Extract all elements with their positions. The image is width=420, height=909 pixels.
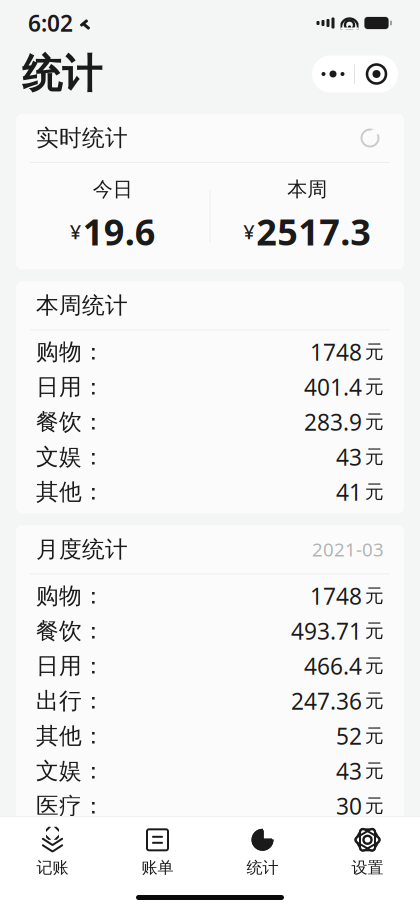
staticText: 统计 [22, 49, 102, 98]
staticText: 元 [365, 445, 384, 468]
staticText: 购物： [36, 338, 105, 366]
staticText: 1748 [310, 581, 362, 611]
staticText: 6:02 [28, 8, 73, 38]
staticText: 医疗： [36, 792, 105, 820]
staticText: 元 [365, 410, 384, 433]
staticText: 466.4 [304, 651, 362, 681]
staticText: 本周统计 [36, 291, 128, 319]
staticText: 出行： [36, 687, 105, 715]
button[interactable]: 更多与记录 [312, 55, 398, 92]
button[interactable]: 账单 [105, 825, 210, 879]
staticText: 41 [336, 477, 362, 507]
staticText: 元 [365, 759, 384, 782]
staticText: 其他： [36, 478, 105, 506]
staticText: 文娱： [36, 443, 105, 471]
staticText: 元 [365, 794, 384, 817]
staticText: ¥ [70, 218, 81, 245]
staticText: 493.71 [291, 616, 362, 646]
staticText: 43 [336, 442, 362, 472]
staticText: 元 [365, 340, 384, 363]
staticText: 19.6 [83, 208, 156, 255]
staticText: 元 [365, 480, 384, 503]
staticText: 247.36 [291, 686, 362, 716]
staticText: 日用： [36, 373, 105, 401]
staticText: 52 [336, 721, 362, 751]
staticText: 设置 [351, 858, 383, 877]
staticText: 2517.3 [256, 208, 371, 255]
staticText: 元 [365, 654, 384, 677]
staticText: 文娱： [36, 757, 105, 785]
staticText: 餐饮： [36, 617, 105, 645]
staticText: 元 [365, 584, 384, 607]
button[interactable]: 刷新 [356, 124, 384, 152]
staticText: 元 [365, 619, 384, 642]
staticText: 1748 [310, 337, 362, 367]
staticText: 元 [365, 689, 384, 712]
staticText: 日用： [36, 652, 105, 680]
staticText: 283.9 [304, 407, 362, 437]
staticText: 2021-03 [312, 537, 384, 562]
staticText: 记账 [36, 858, 68, 877]
staticText: 30 [336, 791, 362, 821]
staticText: 账单 [141, 858, 173, 877]
staticText: 本周 [287, 177, 327, 202]
staticText: 月度统计 [36, 535, 128, 563]
staticText: 今日 [93, 177, 133, 202]
staticText: 元 [365, 724, 384, 747]
staticText: 元 [365, 375, 384, 398]
staticText: 43 [336, 756, 362, 786]
staticText: 其他： [36, 722, 105, 750]
staticText: 实时统计 [36, 124, 128, 152]
button[interactable]: 设置 [315, 825, 420, 879]
staticText: ¥ [243, 218, 254, 245]
staticText: 统计 [246, 858, 278, 877]
button[interactable]: 统计 [210, 825, 315, 879]
staticText: 401.4 [304, 372, 362, 402]
button[interactable]: 记账 [0, 825, 105, 879]
staticText: 购物： [36, 582, 105, 610]
staticText: 餐饮： [36, 408, 105, 436]
